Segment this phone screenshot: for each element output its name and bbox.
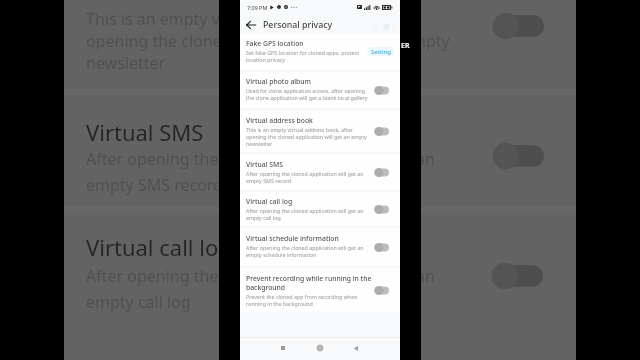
staticText: npty [416,30,450,52]
staticText: empty SMS record [86,174,223,196]
button[interactable]: Virtual photo album [240,72,400,108]
staticText: Virtual SMS [246,160,372,169]
button[interactable]: Toggle [374,167,389,178]
button[interactable]: Toggle [374,285,389,296]
staticText: Set fake GPS location for cloned apps, p… [246,49,360,56]
staticText: Virtual address book [246,116,372,125]
button[interactable]: Back [244,18,258,32]
staticText: ER [401,41,410,51]
staticText: After opening the [86,148,219,170]
staticText: opening the clone [86,30,222,52]
staticText: Setting [371,48,391,56]
button[interactable]: Setting [367,47,394,56]
staticText: Virtual SMS [86,117,204,147]
staticText: After opening the cloned application wil… [246,170,364,177]
button[interactable]: Home [312,340,328,356]
button[interactable]: Fake GPS location [240,34,400,69]
button[interactable]: Virtual SMS [240,155,400,189]
staticText: opening the cloned application will get … [246,133,368,140]
staticText: Personal privacy [263,19,333,31]
button[interactable]: Virtual address book [240,111,400,152]
staticText: empty call log [86,291,191,313]
staticText: an [416,148,435,170]
staticText: Virtual call log [246,197,372,206]
staticText: Virtual photo album [246,77,372,86]
staticText: empty SMS record [246,177,292,184]
staticText: This is an empty v [86,8,220,30]
staticText: running in the background [246,300,313,307]
staticText: an [416,265,435,287]
button[interactable]: Toggle [374,204,389,215]
staticText: After opening the cloned application wil… [246,207,364,214]
staticText: Prevent recording while running in the b… [246,274,372,292]
staticText: 7:09 PM [247,4,268,11]
staticText: This is an empty virtual address book, a… [246,126,353,133]
button[interactable]: Virtual schedule information [240,229,400,266]
button[interactable]: Back [348,340,364,356]
staticText: empty call log [246,214,281,221]
staticText: the clone application will get a blank l… [246,94,368,101]
staticText: After opening the cloned application wil… [246,244,364,251]
button[interactable]: Prevent recording while running in the b… [240,269,400,312]
staticText: location privacy [246,56,285,63]
staticText: Used for clone application access, after… [246,87,366,94]
button[interactable]: Toggle [374,126,389,137]
staticText: Virtual schedule information [246,234,372,243]
button[interactable]: Recents [275,340,291,356]
staticText: Fake GPS location [246,39,372,48]
button[interactable]: Toggle [374,242,389,253]
button[interactable]: Virtual call log [240,192,400,226]
staticText: newsletter [246,140,273,147]
staticText: newsletter [86,52,166,74]
staticText: empty schedule information [246,251,317,258]
staticText: After opening the [86,265,219,287]
staticText: Prevent the cloned app from recording wh… [246,293,358,300]
staticText: Virtual call log [86,232,232,262]
button[interactable]: Toggle [374,85,389,96]
